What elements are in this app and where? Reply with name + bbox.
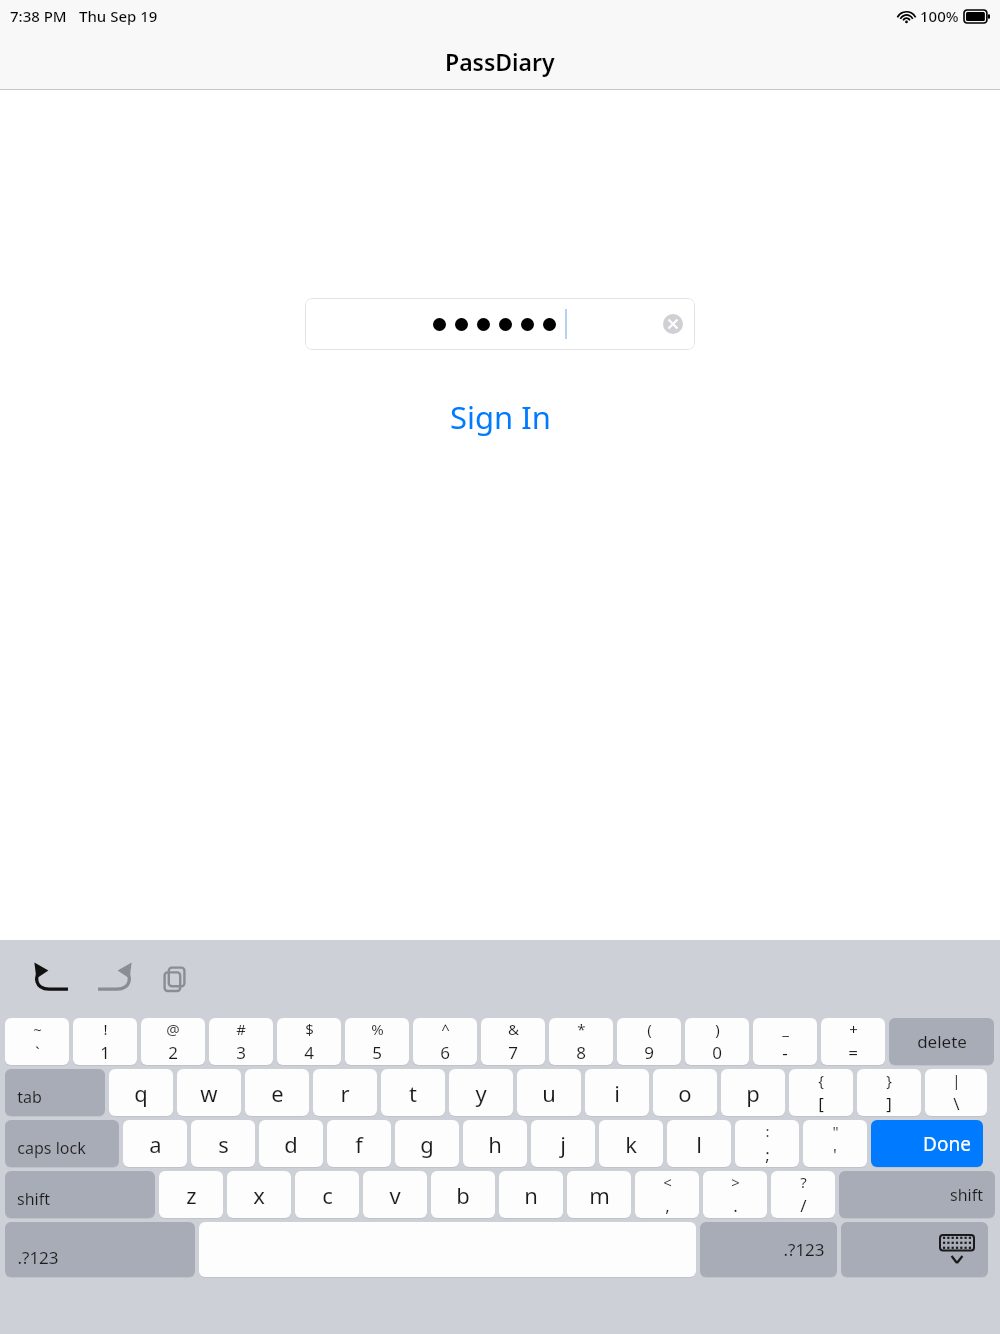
button[interactable]: x — [227, 1171, 291, 1218]
staticText: ? — [800, 1172, 807, 1192]
staticText: / — [800, 1194, 807, 1217]
button[interactable]: ^ — [413, 1018, 477, 1065]
staticText: 8 — [576, 1041, 586, 1064]
button[interactable]: p — [721, 1069, 785, 1116]
button[interactable]: .?123 — [5, 1222, 195, 1277]
button[interactable]: .?123 — [700, 1222, 837, 1277]
button[interactable]: d — [259, 1120, 323, 1167]
button[interactable]: c — [295, 1171, 359, 1218]
button[interactable]: % — [345, 1018, 409, 1065]
button[interactable]: " — [803, 1120, 867, 1167]
button[interactable]: ~ — [5, 1018, 69, 1065]
staticText: . — [733, 1194, 738, 1217]
button[interactable]: Undo — [26, 953, 78, 1005]
staticText: [ — [818, 1092, 824, 1115]
button[interactable]: t — [381, 1069, 445, 1116]
staticText: ! — [103, 1019, 108, 1039]
button[interactable]: < — [635, 1171, 699, 1218]
staticText: ; — [765, 1143, 770, 1166]
button[interactable]: : — [735, 1120, 799, 1167]
staticText: : — [765, 1121, 770, 1141]
staticText: 4 — [304, 1041, 314, 1064]
button[interactable]: ) — [685, 1018, 749, 1065]
button[interactable]: ! — [73, 1018, 137, 1065]
staticText: = — [848, 1041, 858, 1064]
button[interactable]: * — [549, 1018, 613, 1065]
staticText: m — [589, 1180, 610, 1210]
staticText: 7 — [508, 1041, 518, 1064]
button[interactable]: caps lock — [5, 1120, 119, 1167]
button[interactable]: delete — [889, 1018, 994, 1065]
staticText: < — [663, 1172, 672, 1192]
staticText: j — [560, 1129, 566, 1159]
button[interactable]: s — [191, 1120, 255, 1167]
staticText: - — [782, 1041, 788, 1064]
button[interactable]: Clear text — [305, 298, 695, 350]
staticText: e — [271, 1078, 284, 1108]
button[interactable]: u — [517, 1069, 581, 1116]
button[interactable]: } — [857, 1069, 921, 1116]
button[interactable]: ( — [617, 1018, 681, 1065]
button[interactable]: & — [481, 1018, 545, 1065]
staticText: % — [371, 1019, 384, 1039]
staticText: c — [322, 1180, 333, 1210]
button[interactable]: + — [821, 1018, 885, 1065]
button[interactable]: Done — [871, 1120, 983, 1167]
button[interactable]: Hide keyboard — [841, 1222, 988, 1277]
staticText: $ — [305, 1019, 314, 1039]
staticText: h — [488, 1129, 502, 1159]
button[interactable]: Paste — [150, 953, 202, 1005]
button[interactable]: tab — [5, 1069, 105, 1116]
staticText: } — [886, 1070, 892, 1090]
button[interactable]: shift — [5, 1171, 155, 1218]
button[interactable]: q — [109, 1069, 173, 1116]
button[interactable]: { — [789, 1069, 853, 1116]
staticText: d — [284, 1129, 298, 1159]
button[interactable]: # — [209, 1018, 273, 1065]
staticText: k — [625, 1129, 637, 1159]
button[interactable]: i — [585, 1069, 649, 1116]
staticText: Sign In — [450, 396, 551, 438]
button[interactable]: n — [499, 1171, 563, 1218]
button[interactable]: shift — [839, 1171, 995, 1218]
button[interactable]: Sign In — [436, 392, 565, 442]
button[interactable]: v — [363, 1171, 427, 1218]
button[interactable]: k — [599, 1120, 663, 1167]
staticText: & — [508, 1019, 519, 1039]
button[interactable]: | — [925, 1069, 987, 1116]
button[interactable]: z — [159, 1171, 223, 1218]
button[interactable]: > — [703, 1171, 767, 1218]
button[interactable]: Redo — [88, 953, 140, 1005]
staticText: 1 — [100, 1041, 110, 1064]
button[interactable]: m — [567, 1171, 631, 1218]
staticText: x — [253, 1180, 265, 1210]
button[interactable]: Clear text — [661, 312, 685, 336]
button[interactable]: g — [395, 1120, 459, 1167]
staticText: { — [818, 1070, 824, 1090]
button[interactable]: w — [177, 1069, 241, 1116]
button[interactable]: e — [245, 1069, 309, 1116]
staticText: f — [355, 1129, 363, 1159]
button[interactable]: h — [463, 1120, 527, 1167]
button[interactable]: b — [431, 1171, 495, 1218]
staticText: n — [524, 1180, 538, 1210]
staticText: l — [696, 1129, 702, 1159]
staticText: o — [678, 1078, 692, 1108]
button[interactable]: j — [531, 1120, 595, 1167]
staticText: # — [236, 1019, 246, 1039]
button[interactable]: f — [327, 1120, 391, 1167]
button[interactable]: _ — [753, 1018, 817, 1065]
button[interactable]: ? — [771, 1171, 835, 1218]
staticText: r — [340, 1078, 350, 1108]
staticText: ~ — [33, 1019, 42, 1039]
staticText: ` — [35, 1041, 40, 1064]
button[interactable]: a — [123, 1120, 187, 1167]
button[interactable]: o — [653, 1069, 717, 1116]
button[interactable]: $ — [277, 1018, 341, 1065]
button[interactable]: @ — [141, 1018, 205, 1065]
button[interactable]: r — [313, 1069, 377, 1116]
button[interactable]: y — [449, 1069, 513, 1116]
button[interactable]: l — [667, 1120, 731, 1167]
staticText: delete — [917, 1030, 967, 1053]
